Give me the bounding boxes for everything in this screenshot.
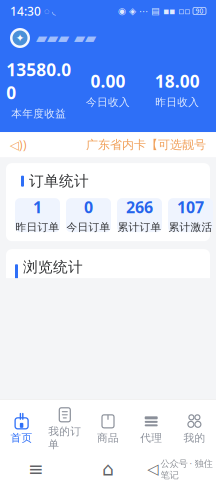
staticText: 90 bbox=[195, 7, 203, 15]
staticText: 今日收入 bbox=[86, 95, 130, 109]
button[interactable]: 0 bbox=[66, 198, 111, 232]
staticText: 我的订单 bbox=[48, 425, 81, 451]
staticText: 商品 bbox=[97, 431, 119, 444]
staticText: 首页 bbox=[11, 431, 33, 444]
staticText: ⌂ bbox=[102, 458, 114, 480]
button[interactable]: 预估收入 bbox=[81, 472, 121, 480]
button[interactable]: 1 bbox=[15, 198, 60, 232]
button[interactable]: 财务 bbox=[168, 404, 213, 446]
button[interactable]: 107 bbox=[168, 198, 213, 232]
button[interactable]: 商品 bbox=[86, 409, 130, 448]
staticText: ◁)) bbox=[10, 137, 27, 153]
button[interactable]: 首页 bbox=[0, 409, 43, 448]
button[interactable]: Recents bbox=[0, 458, 72, 480]
staticText: 订单查询 bbox=[66, 427, 110, 440]
staticText: 18.00 bbox=[155, 69, 200, 92]
staticText: ◉ ◈ ⋯ ▤ ▪▪ ▫▫ bbox=[118, 6, 190, 16]
staticText: 107 bbox=[177, 196, 204, 218]
staticText: ◁ bbox=[147, 461, 158, 477]
staticText: 代理 bbox=[140, 431, 162, 444]
staticText: 0 bbox=[84, 196, 93, 218]
staticText: 0.00 bbox=[90, 69, 125, 92]
button[interactable]: ◁)) bbox=[0, 132, 216, 157]
staticText: 累计订单 bbox=[117, 221, 161, 234]
staticText: 昨日订单 bbox=[15, 221, 59, 234]
staticText: 今日订单 bbox=[66, 221, 110, 234]
button[interactable]: 我的 bbox=[173, 409, 216, 448]
staticText: 订单统计 bbox=[29, 172, 89, 190]
button[interactable]: 订单查询 bbox=[66, 404, 111, 446]
staticText: 本年度收益 bbox=[11, 107, 66, 120]
button[interactable]: 商品 bbox=[15, 404, 60, 446]
staticText: 累计激活 bbox=[168, 221, 212, 234]
staticText: 13580.00 bbox=[6, 58, 71, 104]
staticText: 昨日收入 bbox=[155, 95, 199, 109]
staticText: 266 bbox=[126, 196, 153, 218]
button[interactable]: 我的订单 bbox=[43, 403, 86, 455]
button[interactable]: Home bbox=[72, 458, 144, 480]
staticText: ✦ bbox=[15, 32, 24, 44]
button[interactable]: 订单数量 bbox=[121, 472, 161, 480]
staticText: ≡ bbox=[28, 458, 44, 480]
staticText: 物流预警 bbox=[117, 427, 161, 440]
button[interactable]: ★ bbox=[117, 404, 162, 446]
staticText: 14:30 bbox=[10, 3, 41, 19]
staticText: 广东省内卡【可选靓号 bbox=[86, 137, 206, 152]
staticText: 统计 bbox=[23, 472, 53, 480]
button[interactable]: 266 bbox=[117, 198, 162, 232]
staticText: 公众号 · 独住笔记 bbox=[160, 457, 212, 480]
button[interactable]: Back bbox=[144, 457, 216, 480]
staticText: 浏览统计 bbox=[23, 258, 83, 276]
button[interactable]: 代理 bbox=[130, 409, 173, 448]
staticText: 预估收入 bbox=[84, 468, 117, 480]
staticText: 我的 bbox=[183, 431, 205, 444]
button[interactable]: 每日数据 bbox=[161, 472, 201, 480]
staticText: 每日数据 bbox=[164, 468, 197, 480]
staticText: ▰▰▰ ▰▰ bbox=[36, 30, 96, 46]
staticText: 1 bbox=[33, 196, 42, 218]
staticText: ◌ ◟ bbox=[44, 5, 56, 17]
staticText: 订单数量 bbox=[124, 468, 157, 480]
staticText: 财务 bbox=[179, 427, 201, 440]
staticText: 商品 bbox=[26, 427, 48, 440]
